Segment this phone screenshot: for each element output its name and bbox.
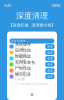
staticText: 广告垃圾 [15, 66, 31, 71]
button[interactable]: 无用安装包 [7, 61, 57, 67]
staticText: 系统缓存 [15, 42, 31, 47]
staticText: 聊天记录 [15, 72, 31, 77]
staticText: 【深度扫描 · 清理更出色】 [8, 22, 55, 28]
staticText: 深度清理 [16, 11, 48, 21]
staticText: 清理 [47, 45, 53, 48]
staticText: 清理 [47, 57, 53, 60]
staticText: 320 MB [15, 59, 26, 63]
staticText: 正在扫描中… [11, 39, 28, 43]
staticText: 清理 [47, 69, 53, 72]
staticText: 应用垃圾 [15, 48, 31, 53]
button[interactable]: 广告垃圾 [7, 67, 57, 73]
button[interactable]: 卸载残留 [7, 55, 57, 61]
button[interactable]: 应用垃圾 [7, 49, 57, 55]
staticText: 卸载残留 [15, 54, 31, 59]
staticText: 无用安装包 [15, 60, 35, 65]
staticText: 已为您扫描完成全部项目 [15, 82, 48, 86]
staticText: 清理 [47, 75, 53, 78]
button[interactable]: 聊天记录 [7, 73, 57, 79]
staticText: 9:41 [4, 3, 11, 8]
staticText: 100% [51, 3, 60, 8]
staticText: 1.2 GB [15, 47, 25, 51]
staticText: 640 MB [15, 65, 26, 69]
staticText: 120 MB [15, 71, 26, 75]
staticText: 清理 [47, 63, 53, 66]
button[interactable]: 系统缓存 [7, 43, 57, 49]
staticText: 860 MB [15, 53, 26, 57]
staticText: 清理 [47, 51, 53, 54]
staticText: 2.4 GB [15, 77, 25, 81]
